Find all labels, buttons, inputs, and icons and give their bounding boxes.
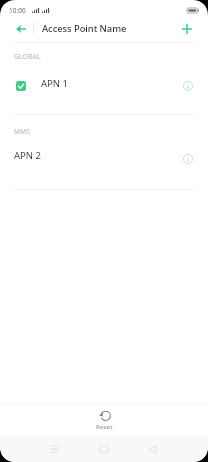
staticText: GLOBAL — [14, 52, 41, 61]
button[interactable]: Back — [139, 436, 165, 462]
staticText: 10:00 — [9, 6, 26, 15]
button[interactable]: Access point details — [176, 74, 200, 98]
button[interactable]: APN 2 — [0, 142, 208, 189]
button[interactable]: Access point details — [176, 147, 200, 171]
button[interactable]: Add access point — [173, 15, 200, 42]
staticText: Reset — [96, 423, 113, 431]
staticText: APN 1 — [41, 77, 68, 90]
staticText: Access Point Name — [42, 22, 127, 35]
button[interactable]: Back — [7, 15, 34, 42]
staticText: MMS — [14, 127, 31, 136]
button[interactable]: Recent apps — [41, 436, 67, 462]
button[interactable]: Home — [91, 436, 117, 462]
staticText: APN 2 — [14, 149, 41, 162]
button[interactable]: Reset — [84, 408, 125, 433]
button[interactable]: APN 1 — [0, 70, 208, 114]
